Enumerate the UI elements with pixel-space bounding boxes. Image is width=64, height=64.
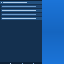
button[interactable] bbox=[1, 13, 43, 16]
button[interactable]: Menu bbox=[0, 1, 44, 4]
button[interactable] bbox=[1, 5, 43, 8]
button[interactable] bbox=[1, 9, 43, 12]
button[interactable]: Panel bbox=[42, 0, 64, 64]
button[interactable] bbox=[1, 17, 43, 20]
